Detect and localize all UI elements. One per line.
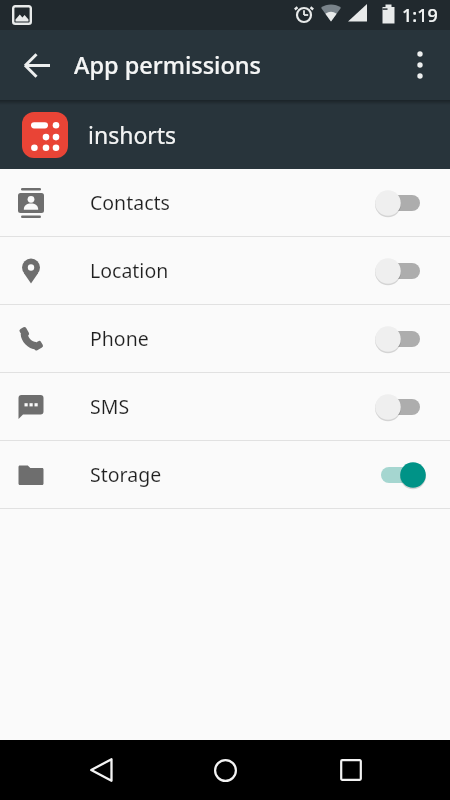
button[interactable] <box>13 41 61 89</box>
button[interactable] <box>375 187 426 219</box>
button[interactable] <box>375 459 426 491</box>
button[interactable]: Phone <box>0 305 450 373</box>
staticText: Location <box>90 257 169 284</box>
staticText: Storage <box>90 461 162 488</box>
button[interactable]: inshorts <box>0 100 450 169</box>
button[interactable]: Location <box>0 237 450 305</box>
button[interactable] <box>396 41 444 89</box>
staticText: SMS <box>90 393 130 420</box>
staticText: Phone <box>90 325 149 352</box>
button[interactable]: SMS <box>0 373 450 441</box>
button[interactable] <box>375 255 426 287</box>
button[interactable] <box>375 391 426 423</box>
staticText: inshorts <box>88 119 177 150</box>
button[interactable] <box>375 323 426 355</box>
button[interactable] <box>185 740 265 800</box>
button[interactable]: Storage <box>0 441 450 509</box>
staticText: Contacts <box>90 189 170 216</box>
button[interactable] <box>311 740 391 800</box>
staticText: 1:19 <box>402 3 438 28</box>
button[interactable] <box>59 740 139 800</box>
button[interactable]: Contacts <box>0 169 450 237</box>
staticText: App permissions <box>74 49 261 81</box>
